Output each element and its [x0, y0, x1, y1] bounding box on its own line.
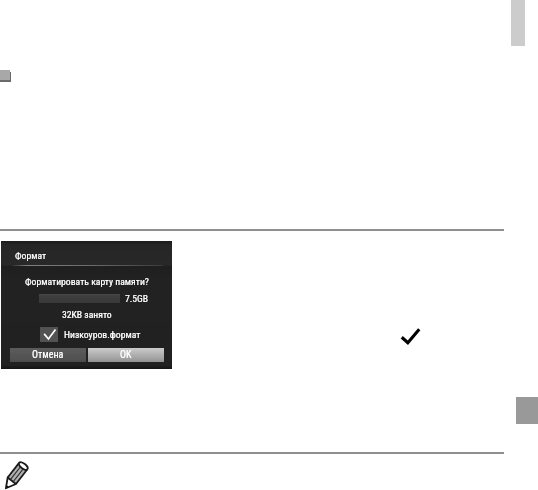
staticText: 32KB занято	[62, 309, 112, 320]
button[interactable]: OK	[88, 348, 164, 362]
staticText: 7.5GB	[125, 293, 149, 304]
staticText: OK	[120, 349, 132, 361]
button[interactable]: Низкоуров.формат	[40, 327, 143, 342]
button[interactable]: Отмена	[10, 348, 86, 362]
staticText: Низкоуров.формат	[64, 329, 141, 340]
other: Note	[3, 461, 28, 490]
staticText: Отмена	[32, 349, 64, 361]
other: Checkmark	[401, 328, 420, 344]
staticText: Форматировать карту памяти?	[25, 276, 149, 287]
staticText: Формат	[15, 250, 47, 261]
